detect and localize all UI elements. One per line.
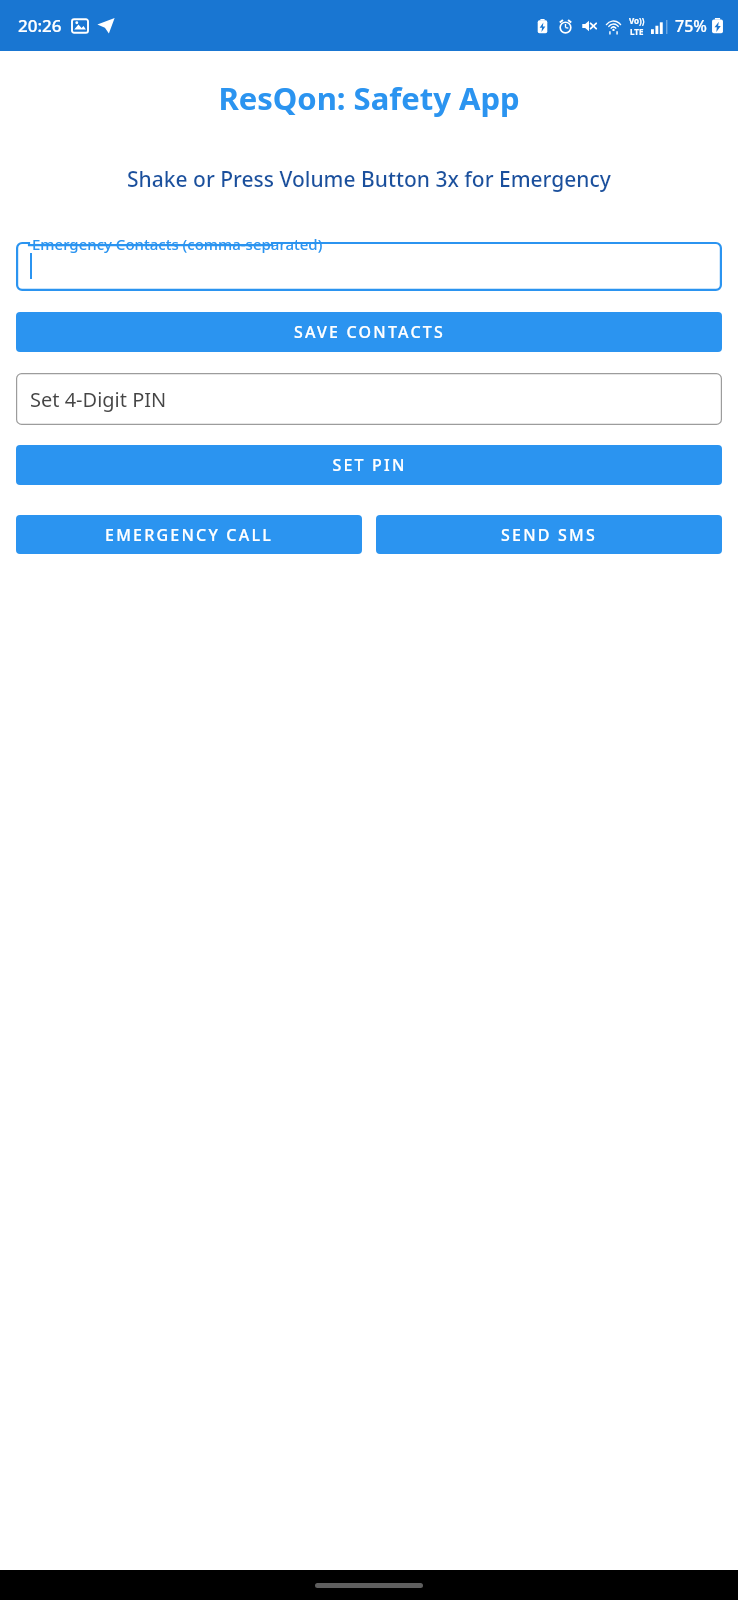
button[interactable]: SEND SMS	[376, 515, 722, 554]
staticText: SAVE CONTACTS	[294, 321, 445, 343]
staticText: Set 4-Digit PIN	[30, 386, 167, 413]
staticText: LTE	[630, 26, 644, 37]
staticText: 75%	[675, 15, 707, 37]
staticText: Shake or Press Volume Button 3x for Emer…	[36, 165, 702, 194]
staticText: ResQon: Safety App	[16, 77, 722, 119]
staticText: SET PIN	[332, 454, 407, 476]
button[interactable]: SAVE CONTACTS	[16, 312, 722, 352]
staticText: Vo))	[629, 15, 645, 26]
button[interactable]: EMERGENCY CALL	[16, 515, 362, 554]
button[interactable]: Set 4-Digit PIN input	[16, 373, 722, 425]
staticText: Emergency Contacts (comma-separated)	[32, 234, 323, 254]
staticText: 20:26	[18, 14, 62, 37]
staticText: SEND SMS	[501, 524, 597, 546]
button[interactable]: SET PIN	[16, 445, 722, 485]
button[interactable]: Emergency contacts input	[16, 234, 722, 291]
staticText: EMERGENCY CALL	[105, 524, 273, 546]
